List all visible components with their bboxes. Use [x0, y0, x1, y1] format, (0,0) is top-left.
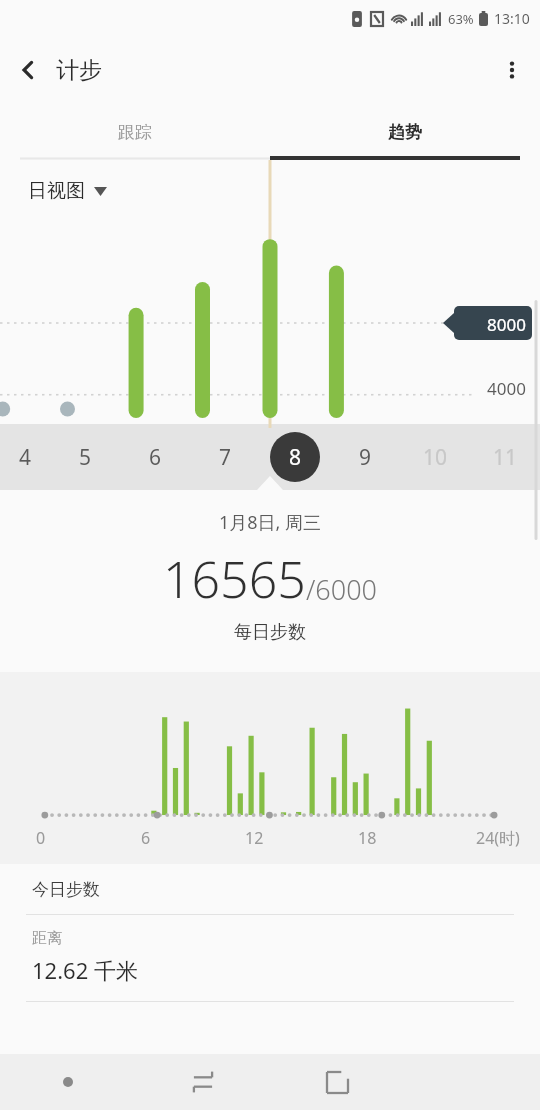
staticText: 18 — [358, 827, 377, 849]
staticText: 计步 — [56, 56, 102, 85]
staticText: 日视图 — [28, 179, 85, 203]
staticText: 63% — [448, 10, 474, 28]
button[interactable]: Menu — [0, 1054, 135, 1110]
button[interactable]: 跟踪 — [0, 104, 270, 160]
staticText: 0 — [36, 827, 46, 849]
button[interactable]: 日视图 — [28, 179, 107, 203]
button[interactable]: 7 — [190, 443, 260, 472]
staticText: 9 — [359, 443, 372, 472]
button[interactable]: 6 — [120, 443, 190, 472]
staticText: 今日步数 — [32, 879, 100, 900]
button[interactable]: 9 — [330, 443, 400, 472]
button[interactable]: 5 — [50, 443, 120, 472]
staticText: 跟踪 — [118, 122, 152, 143]
staticText: 4000 — [487, 377, 526, 400]
staticText: 12 — [245, 827, 264, 849]
staticText: /6000 — [306, 571, 378, 608]
button[interactable]: Recents — [270, 1054, 405, 1110]
staticText: 5 — [79, 443, 92, 472]
button[interactable]: 8 — [260, 432, 330, 482]
staticText: 11 — [493, 443, 518, 472]
button[interactable]: More options — [484, 42, 540, 98]
button[interactable]: 趋势 — [270, 104, 540, 160]
staticText: 4 — [19, 443, 32, 472]
staticText: 8000 — [487, 313, 526, 336]
staticText: 趋势 — [388, 122, 422, 143]
button[interactable]: 11 — [470, 443, 540, 472]
button[interactable]: Back — [0, 42, 56, 98]
button[interactable]: 4 — [0, 443, 50, 472]
staticText: 6 — [149, 443, 162, 472]
staticText: 6 — [141, 827, 151, 849]
staticText: 每日步数 — [234, 621, 306, 644]
button[interactable]: 距离 — [0, 915, 540, 1001]
staticText: 12.62 千米 — [32, 955, 138, 985]
staticText: 10 — [423, 443, 448, 472]
staticText: 距离 — [32, 929, 62, 948]
button[interactable]: 今日步数 — [0, 864, 540, 914]
staticText: 8 — [289, 443, 302, 472]
staticText: 13:10 — [494, 9, 530, 28]
button[interactable]: Back — [135, 1054, 270, 1110]
staticText: 7 — [219, 443, 232, 472]
staticText: 1月8日, 周三 — [219, 510, 322, 535]
staticText: 16565 — [163, 545, 306, 613]
button[interactable]: 10 — [400, 443, 470, 472]
staticText: 24(时) — [476, 827, 520, 849]
